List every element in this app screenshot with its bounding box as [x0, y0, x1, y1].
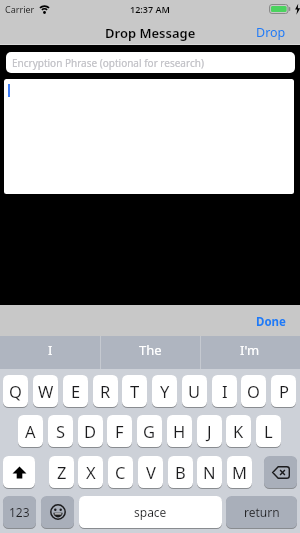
- staticText: I: [48, 341, 53, 359]
- button[interactable]: P: [271, 375, 296, 407]
- button[interactable]: F: [107, 415, 132, 447]
- staticText: U: [188, 380, 201, 402]
- button[interactable]: N: [197, 456, 222, 488]
- button[interactable]: 123: [3, 496, 36, 528]
- button[interactable]: Encryption Phrase (optional for research…: [6, 52, 295, 73]
- button[interactable]: [264, 456, 297, 488]
- button[interactable]: R: [93, 375, 118, 407]
- staticText: The: [139, 341, 162, 359]
- staticText: Z: [57, 461, 67, 483]
- button[interactable]: S: [48, 415, 73, 447]
- button[interactable]: L: [256, 415, 281, 447]
- button[interactable]: Y: [152, 375, 177, 407]
- staticText: Drop: [256, 24, 286, 41]
- staticText: B: [175, 461, 186, 483]
- button[interactable]: U: [182, 375, 207, 407]
- staticText: L: [264, 420, 273, 442]
- button[interactable]: [3, 456, 35, 488]
- staticText: K: [233, 420, 244, 442]
- staticText: S: [56, 420, 66, 442]
- staticText: Q: [9, 380, 22, 402]
- staticText: F: [115, 420, 124, 442]
- button[interactable]: Q: [3, 375, 28, 407]
- button[interactable]: M: [227, 456, 252, 488]
- button[interactable]: K: [226, 415, 251, 447]
- button[interactable]: A: [18, 415, 43, 447]
- staticText: H: [173, 420, 186, 442]
- staticText: T: [130, 380, 140, 402]
- staticText: Y: [160, 380, 170, 402]
- button[interactable]: [4, 79, 294, 194]
- staticText: Encryption Phrase (optional for research…: [12, 56, 204, 70]
- staticText: Drop Message: [105, 24, 196, 42]
- button[interactable]: I: [0, 336, 100, 363]
- button[interactable]: Done: [256, 314, 286, 330]
- button[interactable]: Drop: [256, 24, 286, 41]
- button[interactable]: H: [167, 415, 192, 447]
- button[interactable]: I'm: [200, 336, 300, 363]
- button[interactable]: I: [212, 375, 237, 407]
- button[interactable]: The: [100, 336, 200, 363]
- button[interactable]: space: [79, 496, 222, 528]
- staticText: O: [247, 380, 260, 402]
- staticText: N: [203, 461, 216, 483]
- staticText: J: [207, 420, 212, 442]
- staticText: Done: [256, 314, 286, 330]
- button[interactable]: X: [78, 456, 103, 488]
- staticText: return: [244, 504, 280, 520]
- staticText: G: [143, 420, 156, 442]
- staticText: C: [115, 461, 126, 483]
- staticText: A: [25, 420, 36, 442]
- button[interactable]: O: [241, 375, 266, 407]
- button[interactable]: W: [33, 375, 58, 407]
- button[interactable]: E: [63, 375, 88, 407]
- staticText: I: [222, 380, 228, 402]
- button[interactable]: G: [137, 415, 162, 447]
- staticText: 123: [9, 504, 30, 520]
- staticText: Carrier: [5, 3, 35, 15]
- staticText: W: [38, 380, 54, 402]
- button[interactable]: Z: [49, 456, 74, 488]
- button[interactable]: D: [78, 415, 103, 447]
- staticText: M: [232, 461, 247, 483]
- staticText: P: [279, 380, 289, 402]
- button[interactable]: V: [138, 456, 163, 488]
- staticText: space: [134, 504, 167, 520]
- staticText: R: [100, 380, 111, 402]
- staticText: I'm: [240, 341, 260, 359]
- button[interactable]: return: [226, 496, 297, 528]
- button[interactable]: C: [108, 456, 133, 488]
- button[interactable]: J: [197, 415, 222, 447]
- staticText: D: [84, 420, 97, 442]
- staticText: V: [146, 461, 156, 483]
- button[interactable]: T: [122, 375, 147, 407]
- staticText: 12:37 AM: [130, 3, 170, 15]
- button[interactable]: [41, 496, 74, 528]
- button[interactable]: B: [168, 456, 193, 488]
- staticText: X: [86, 461, 96, 483]
- staticText: E: [71, 380, 81, 402]
